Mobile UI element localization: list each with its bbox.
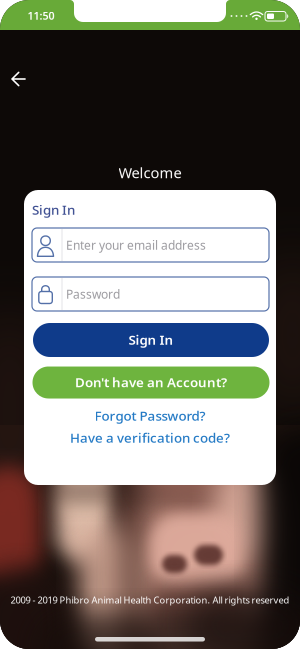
staticText: Password: [66, 286, 120, 302]
staticText: 11:50: [27, 8, 54, 23]
staticText: Don't have an Account?: [75, 373, 227, 391]
staticText: Welcome: [118, 163, 181, 182]
staticText: Sign In: [32, 201, 75, 218]
staticText: Sign In: [128, 331, 173, 348]
staticText: Forgot Password?: [94, 407, 205, 424]
staticText: Have a verification code?: [70, 429, 230, 446]
staticText: Enter your email address: [66, 237, 206, 253]
staticText: 2009 - 2019 Phibro Animal Health Corpora…: [10, 594, 289, 606]
